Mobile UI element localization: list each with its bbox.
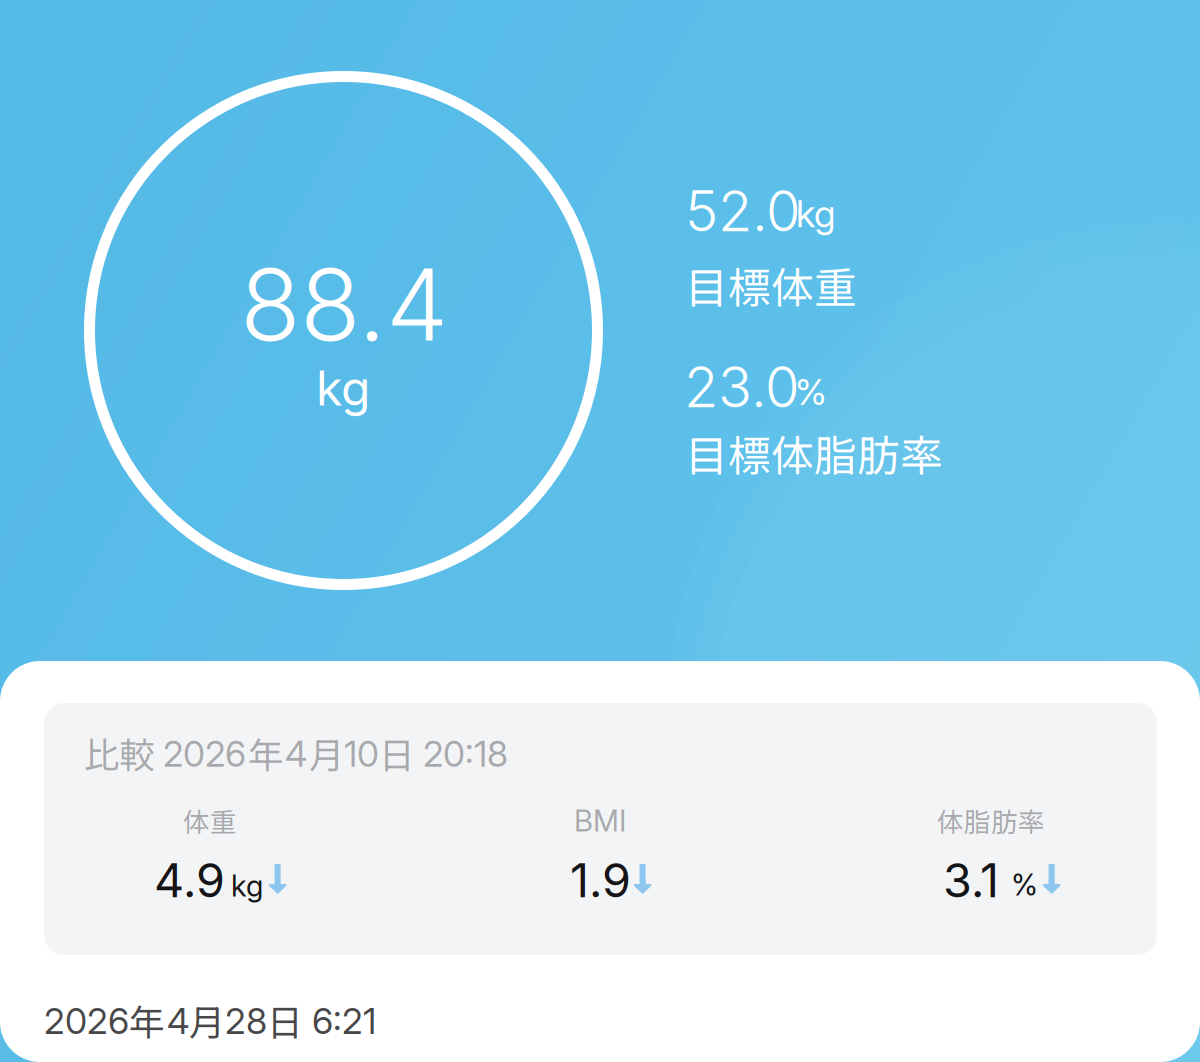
staticText: 比較 2026 年 4 月10日 20:18 [84,727,508,778]
button[interactable]: Current weight, 88.4 kilograms [84,71,603,590]
staticText: 23.0 [684,353,800,421]
staticText: 1.9 [570,852,631,908]
staticText: 2026年 4月28日 6:21 [44,994,376,1046]
staticText: 88.4 [240,245,448,364]
staticText: % [1011,867,1038,902]
staticText: kg [316,359,370,417]
staticText: 目標体重 [685,254,857,316]
staticText: % [795,370,827,414]
staticText: 52.0 [685,177,801,245]
staticText: kg [231,868,263,903]
staticText: 3.1 [943,852,999,908]
staticText: 4.9 [154,852,225,908]
staticText: kg [796,191,836,236]
button[interactable]: Comparison with April 10, 2026 at 20:18 [44,703,1157,955]
staticText: 体脂肪率 [937,801,1045,840]
staticText: 体重 [183,801,237,840]
button[interactable]: 52.0 [685,177,935,327]
button[interactable]: 23.0 [684,353,974,503]
staticText: 目標体脂肪率 [685,422,943,484]
staticText: BMI [574,803,626,838]
